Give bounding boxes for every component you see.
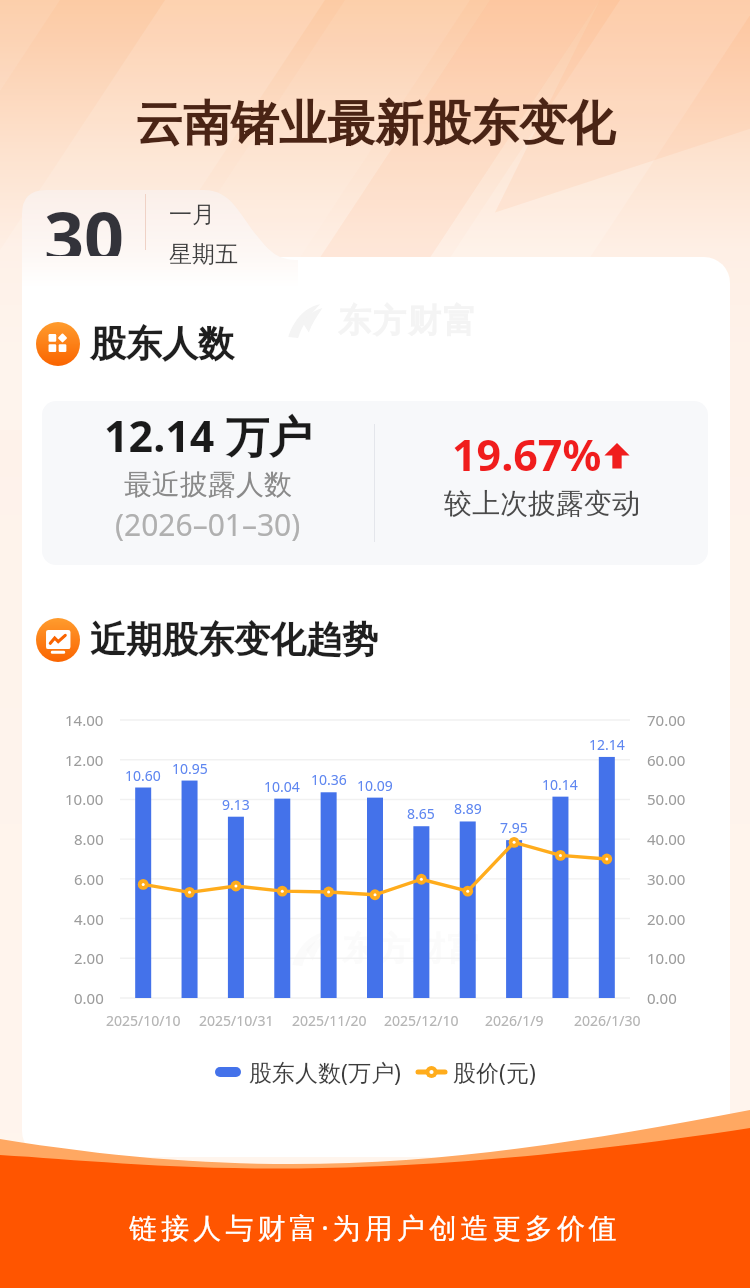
staticText: 东方财富 [337, 300, 477, 342]
button[interactable]: 股东人数 [36, 321, 234, 366]
staticText: 30 [44, 188, 125, 256]
staticText: 20.00 [647, 909, 686, 929]
staticText: 2026/1/9 [485, 1011, 544, 1030]
staticText: 40.00 [647, 829, 686, 849]
staticText: 10.95 [172, 759, 208, 778]
staticText: 0.00 [647, 988, 677, 1008]
staticText: (2026–01–30) [115, 504, 301, 545]
staticText: 8.00 [74, 829, 104, 849]
staticText: 9.13 [222, 795, 250, 814]
staticText: 2025/10/10 [106, 1011, 181, 1030]
staticText: 30.00 [647, 869, 686, 889]
staticText: 股东人数(万户) [249, 1056, 401, 1087]
button[interactable]: 近期股东变化趋势 [36, 617, 378, 662]
staticText: 最近披露人数 [124, 467, 292, 502]
staticText: 10.14 [542, 775, 578, 794]
staticText: 云南锗业最新股东变化 [135, 94, 615, 154]
staticText: 股价(元) [453, 1056, 536, 1087]
staticText: 股东人数 [90, 321, 234, 366]
staticText: 2025/12/10 [384, 1011, 459, 1030]
staticText: 19.67% [452, 425, 602, 484]
staticText: 6.00 [74, 869, 104, 889]
staticText: 2025/11/20 [292, 1011, 367, 1030]
staticText: 10.60 [125, 766, 161, 785]
staticText: 东方财富 [341, 928, 481, 970]
staticText: 10.00 [647, 948, 686, 968]
other: 股东人数 [36, 322, 80, 366]
staticText: 4.00 [74, 909, 104, 929]
staticText: 链接人与财富·为用户创造更多价值 [129, 1208, 621, 1246]
staticText: 60.00 [647, 750, 686, 770]
staticText: 0.00 [74, 988, 104, 1008]
staticText: 8.65 [407, 804, 435, 823]
staticText: 7.95 [500, 818, 528, 837]
staticText: 一月 [169, 200, 215, 229]
staticText: 12.00 [65, 750, 104, 770]
staticText: 12.14 [589, 735, 625, 754]
staticText: 10.09 [357, 776, 393, 795]
staticText: 12.14 万户 [104, 406, 312, 465]
staticText: 10.00 [65, 789, 104, 809]
staticText: 2025/10/31 [199, 1011, 274, 1030]
staticText: 2026/1/30 [574, 1011, 641, 1030]
staticText: 50.00 [647, 789, 686, 809]
staticText: 70.00 [647, 710, 686, 730]
staticText: 10.36 [311, 770, 347, 789]
staticText: 近期股东变化趋势 [90, 617, 378, 662]
staticText: 10.04 [264, 777, 300, 796]
staticText: 2.00 [74, 948, 104, 968]
staticText: 14.00 [65, 710, 104, 730]
staticText: 8.89 [454, 799, 482, 818]
other: 近期股东变化趋势 [36, 618, 80, 662]
staticText: 星期五 [169, 240, 238, 268]
staticText: 较上次披露变动 [444, 486, 640, 521]
